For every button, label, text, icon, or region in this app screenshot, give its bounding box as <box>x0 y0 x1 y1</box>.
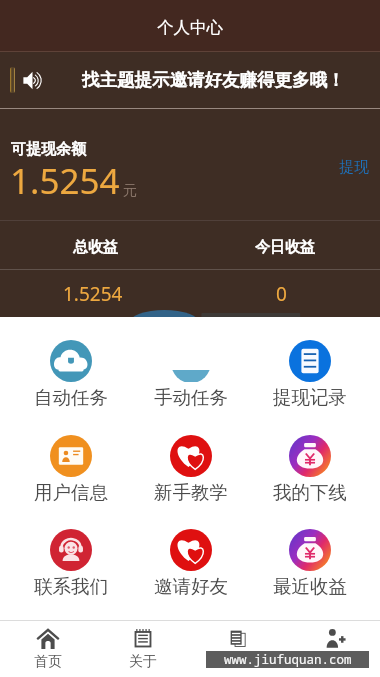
staticText: 我的下线 <box>273 481 347 504</box>
staticText: 个人中心 <box>157 17 223 38</box>
staticText: 邀请好友 <box>154 575 228 598</box>
button[interactable]: 手动任务 <box>145 340 237 409</box>
staticText: 提现记录 <box>273 386 347 409</box>
button[interactable]: 邀请好友 <box>145 529 237 598</box>
staticText: 找主题提示邀请好友赚得更多哦！ <box>82 69 345 91</box>
button[interactable]: 最近收益 <box>264 529 356 598</box>
button[interactable]: 我的下线 <box>264 435 356 504</box>
staticText: 1.5254 <box>63 281 123 307</box>
staticText: 用户信息 <box>34 481 108 504</box>
staticText: 首页 <box>34 653 62 671</box>
staticText: 1.5254 <box>10 157 120 205</box>
button[interactable]: About <box>103 628 183 671</box>
staticText: 手动任务 <box>154 386 228 409</box>
staticText: 联系我们 <box>34 575 108 598</box>
button[interactable]: 今日收益 <box>190 221 380 269</box>
staticText: www.jiufuquan.com <box>224 651 352 668</box>
button[interactable]: 用户信息 <box>25 435 117 504</box>
staticText: 今日收益 <box>255 238 315 257</box>
button[interactable]: Records <box>199 628 279 650</box>
button[interactable]: 提现 <box>339 158 369 177</box>
button[interactable]: 自动任务 <box>25 340 117 409</box>
staticText: 关于 <box>129 653 157 671</box>
staticText: 新手教学 <box>154 481 228 504</box>
staticText: 可提现余额 <box>11 140 86 159</box>
button[interactable]: 联系我们 <box>25 529 117 598</box>
staticText: 元 <box>123 182 137 200</box>
button[interactable]: Invite friends <box>295 628 375 650</box>
staticText: 提现 <box>339 158 369 177</box>
button[interactable]: 找主题提示邀请好友赚得更多哦！ <box>0 52 380 108</box>
button[interactable]: 新手教学 <box>145 435 237 504</box>
button[interactable]: 总收益 <box>0 221 190 269</box>
staticText: 总收益 <box>73 238 118 257</box>
staticText: 自动任务 <box>34 386 108 409</box>
button[interactable]: Home <box>8 628 88 671</box>
button[interactable]: 提现记录 <box>264 340 356 409</box>
staticText: 最近收益 <box>273 575 347 598</box>
staticText: 0 <box>276 281 287 307</box>
